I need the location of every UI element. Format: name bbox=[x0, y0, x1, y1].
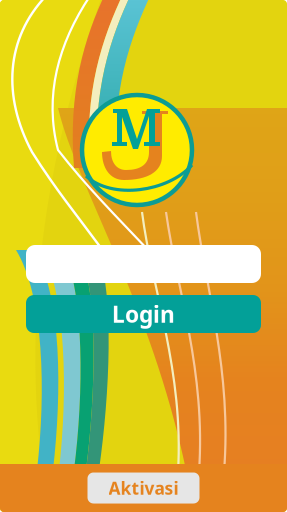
button[interactable]: Aktivasi bbox=[87, 472, 199, 503]
staticText: Aktivasi bbox=[108, 476, 178, 499]
button[interactable]: Login bbox=[26, 295, 261, 333]
staticText: Login bbox=[112, 299, 175, 329]
